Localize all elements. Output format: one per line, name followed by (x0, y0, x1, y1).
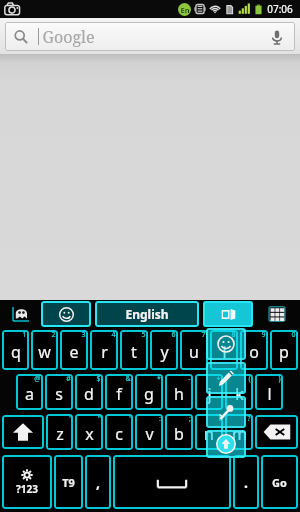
staticText: 5 (141, 330, 146, 340)
button[interactable]: 6 (150, 330, 178, 370)
button[interactable]: 7 (180, 330, 208, 370)
button[interactable]: * (135, 374, 163, 410)
button[interactable]: Keyboard layout (203, 301, 253, 327)
staticText: 4 (111, 330, 116, 340)
staticText: u (189, 341, 199, 363)
staticText: 1 (22, 330, 27, 340)
button[interactable]: ' (105, 414, 133, 450)
staticText: T9 (62, 475, 75, 490)
staticText: # (66, 374, 71, 384)
button[interactable]: Number pad (255, 301, 298, 327)
button[interactable]: - (165, 374, 193, 410)
button[interactable]: 0 (270, 330, 298, 370)
button[interactable]: Emoji (41, 301, 91, 327)
staticText: r (101, 341, 108, 363)
staticText: o (249, 341, 259, 363)
staticText: 07:06 (267, 2, 293, 16)
staticText: b (174, 423, 184, 445)
staticText: En (180, 5, 190, 15)
button[interactable]: Backspace (255, 415, 298, 449)
button[interactable]: 2 (31, 330, 58, 370)
button[interactable]: ; (165, 414, 193, 450)
staticText: ( (248, 374, 251, 384)
button[interactable]: ' (46, 414, 73, 450)
button[interactable]: $ (75, 374, 103, 410)
button[interactable]: " (75, 414, 103, 450)
staticText: 7 (201, 330, 206, 340)
staticText: s (55, 383, 63, 405)
staticText: : (159, 414, 161, 424)
button[interactable]: 8 (210, 330, 238, 370)
button[interactable]: T9 (54, 455, 83, 509)
staticText: 0 (291, 330, 296, 340)
staticText: ; (189, 414, 191, 424)
staticText: 3 (81, 330, 86, 340)
button[interactable]: ) (255, 374, 283, 410)
staticText: g (144, 383, 154, 405)
button[interactable]: + (195, 374, 223, 410)
button[interactable]: ? (225, 414, 253, 450)
staticText: , (96, 473, 100, 492)
button[interactable]: , (85, 455, 111, 509)
button[interactable]: @ (16, 374, 43, 410)
button[interactable]: : (135, 414, 163, 450)
staticText: v (145, 423, 154, 445)
button[interactable]: 1 (2, 330, 29, 370)
button[interactable]: 9 (240, 330, 268, 370)
staticText: x (85, 423, 94, 445)
staticText: ?123 (16, 482, 38, 496)
button[interactable]: English (95, 301, 199, 327)
other: Search (13, 29, 29, 45)
staticText: * (157, 374, 161, 384)
button[interactable]: 3 (60, 330, 88, 370)
staticText: 2 (51, 330, 56, 340)
staticText: l (267, 383, 272, 405)
staticText: q (11, 341, 21, 363)
staticText: n (204, 423, 214, 445)
staticText: z (56, 423, 64, 445)
staticText: ' (69, 414, 71, 424)
button[interactable]: Symbols and settings (2, 455, 52, 509)
button[interactable]: Go (261, 455, 298, 509)
button[interactable]: & (105, 374, 133, 410)
staticText: + (216, 374, 221, 384)
button[interactable]: 5 (120, 330, 148, 370)
button[interactable]: Popup option (206, 362, 246, 394)
staticText: y (160, 341, 169, 363)
button[interactable]: Space (113, 455, 231, 509)
staticText: m (232, 423, 247, 445)
button[interactable]: Search (0, 18, 300, 54)
staticText: i (222, 341, 227, 363)
staticText: a (25, 383, 34, 405)
button[interactable]: Shift (2, 415, 44, 449)
button[interactable]: 4 (90, 330, 118, 370)
button[interactable]: Popup option (206, 430, 246, 458)
staticText: 8 (231, 330, 236, 340)
staticText: English (125, 306, 169, 322)
button[interactable]: Popup option (206, 328, 246, 360)
staticText: f (116, 383, 122, 405)
staticText: h (174, 383, 184, 405)
button[interactable]: GO Keyboard (2, 301, 39, 327)
staticText: c (115, 423, 123, 445)
button[interactable]: ! (195, 414, 223, 450)
staticText: ! (219, 414, 221, 424)
staticText: j (207, 383, 212, 405)
button[interactable]: . (233, 455, 259, 509)
staticText: - (188, 374, 191, 384)
staticText: & (125, 374, 131, 384)
staticText: . (244, 473, 248, 492)
staticText: t (131, 341, 137, 363)
button[interactable]: # (45, 374, 73, 410)
other: Voice search (267, 27, 287, 47)
staticText: 9 (261, 330, 266, 340)
staticText: ? (247, 414, 251, 424)
staticText: Go (272, 475, 287, 490)
staticText: $ (96, 374, 101, 384)
staticText: e (69, 341, 79, 363)
button[interactable]: ( (225, 374, 253, 410)
button[interactable]: Popup option (206, 396, 246, 428)
staticText: 6 (171, 330, 176, 340)
staticText: @ (34, 374, 41, 384)
staticText: d (84, 383, 94, 405)
